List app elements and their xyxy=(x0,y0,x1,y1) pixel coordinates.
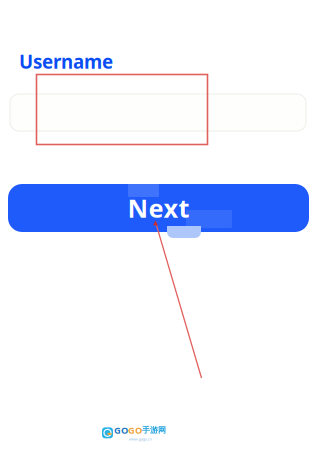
staticText: www.gogo.cn xyxy=(128,436,151,442)
staticText: Username xyxy=(19,49,113,74)
staticText: GO xyxy=(128,424,142,436)
button[interactable]: Next xyxy=(8,184,309,232)
staticText: Next xyxy=(127,191,189,225)
button[interactable]: Username text field xyxy=(10,94,306,131)
staticText: 手游网 xyxy=(142,425,166,435)
staticText: GO xyxy=(114,424,128,436)
